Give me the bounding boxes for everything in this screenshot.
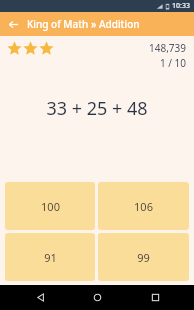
staticText: 10:33 (172, 1, 190, 11)
staticText: 91 (44, 250, 57, 265)
button[interactable]: 106 (98, 182, 189, 230)
button[interactable]: Back (4, 15, 22, 33)
staticText: 100 (41, 199, 60, 214)
staticText: 1 / 10 (159, 56, 186, 70)
button[interactable]: 100 (5, 182, 95, 230)
staticText: 33 + 25 + 48 (46, 96, 148, 121)
button[interactable]: 91 (5, 233, 95, 281)
button[interactable]: Back (22, 285, 58, 310)
staticText: 106 (134, 199, 153, 214)
staticText: King of Math » Addition (27, 17, 140, 31)
staticText: 148,739 (149, 41, 186, 55)
button[interactable]: Recent apps (137, 285, 173, 310)
button[interactable]: Home (79, 285, 115, 310)
button[interactable]: 99 (98, 233, 189, 281)
staticText: 99 (137, 250, 150, 265)
